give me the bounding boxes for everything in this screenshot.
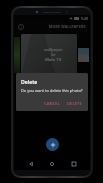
staticText: wallpaper: [44, 47, 63, 52]
button[interactable]: MORE WALLPAPERS: [48, 23, 87, 30]
staticText: Delete: [21, 78, 38, 85]
staticText: Mate 10: [45, 57, 62, 63]
button[interactable]: CANCEL: [42, 99, 62, 108]
button[interactable]: Recents: [69, 159, 79, 169]
staticText: DELETE: [67, 101, 82, 106]
button[interactable]: Info: [17, 23, 25, 31]
button[interactable]: [14, 37, 20, 73]
button[interactable]: DELETE: [65, 99, 84, 108]
staticText: MORE WALLPAPERS: [49, 24, 86, 29]
button[interactable]: Home: [47, 159, 57, 169]
button[interactable]: Back: [26, 159, 36, 169]
button[interactable]: Add: [46, 138, 59, 151]
staticText: 9:48: [81, 16, 88, 21]
staticText: Do you want to delete this photo?: [21, 88, 83, 93]
staticText: for: [51, 52, 56, 57]
button[interactable]: [78, 48, 89, 62]
button[interactable]: wallpaper: [21, 34, 77, 76]
staticText: CANCEL: [44, 101, 60, 106]
